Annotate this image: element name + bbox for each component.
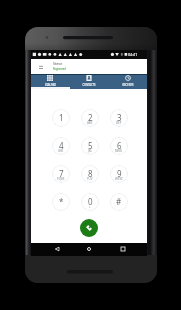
staticText: Steve (53, 61, 63, 66)
staticText: 5 (88, 140, 93, 151)
button[interactable]: 1 (52, 109, 70, 127)
button[interactable]: 8 (81, 165, 99, 183)
staticText: 0 (88, 196, 93, 207)
staticText: 8 (88, 168, 93, 179)
button[interactable]: CONTACTS (69, 74, 108, 89)
staticText: 3 (117, 112, 122, 123)
staticText: 6 (117, 140, 122, 151)
button[interactable]: # (110, 193, 128, 211)
staticText: DIALPAD (45, 83, 56, 87)
staticText: JKL (88, 149, 93, 153)
staticText: ABC (87, 121, 93, 125)
button[interactable]: Back (51, 243, 63, 255)
staticText: WXYZ (115, 177, 123, 181)
staticText: 2 (88, 112, 93, 123)
button[interactable]: Open navigation menu (33, 59, 48, 74)
staticText: RECENTS (122, 83, 134, 87)
staticText: GHI (58, 149, 64, 153)
button[interactable]: 4 (52, 137, 70, 155)
staticText: TUV (87, 177, 93, 181)
staticText: 7 (59, 168, 64, 179)
staticText: Registered (53, 67, 66, 70)
staticText: * (59, 196, 64, 207)
staticText: PQRS (57, 177, 65, 181)
staticText: CONTACTS (82, 83, 96, 87)
button[interactable]: 7 (52, 165, 70, 183)
staticText: MNO (115, 149, 123, 153)
button[interactable]: Call (80, 219, 98, 237)
staticText: 04:41 (128, 52, 138, 57)
button[interactable]: Recent apps (117, 243, 129, 255)
button[interactable]: 6 (110, 137, 128, 155)
staticText: 1 (59, 112, 64, 123)
button[interactable]: Home (83, 243, 95, 255)
button[interactable]: 2 (81, 109, 99, 127)
button[interactable]: 5 (81, 137, 99, 155)
staticText: DEF (116, 121, 122, 125)
button[interactable]: 9 (110, 165, 128, 183)
staticText: + (89, 205, 91, 209)
staticText: 9 (117, 168, 122, 179)
staticText: 4 (59, 140, 64, 151)
button[interactable]: DIALPAD (31, 74, 69, 89)
button[interactable]: 0 (81, 193, 99, 211)
staticText: # (116, 196, 122, 207)
button[interactable]: 3 (110, 109, 128, 127)
button[interactable]: * (52, 193, 70, 211)
button[interactable]: RECENTS (108, 74, 147, 89)
